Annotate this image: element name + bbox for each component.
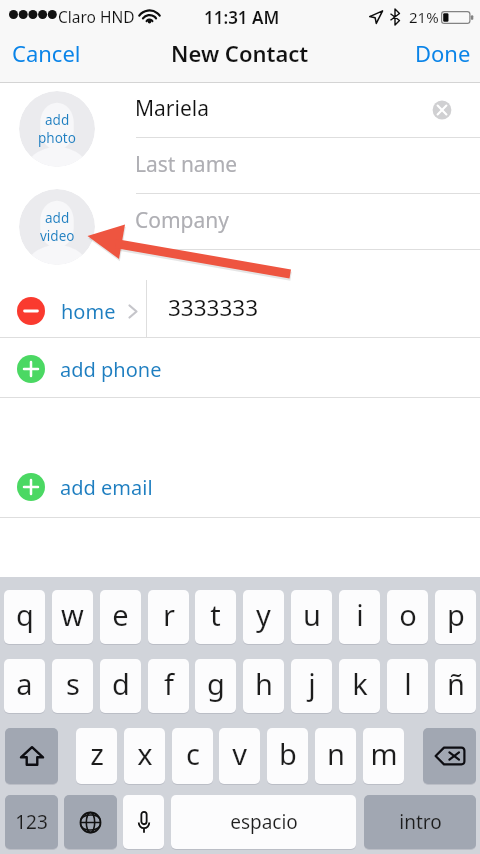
staticText: o xyxy=(399,595,417,634)
staticText: j xyxy=(308,664,316,703)
staticText: add email xyxy=(60,474,153,501)
staticText: Last name xyxy=(135,150,238,179)
staticText: y xyxy=(256,595,271,634)
staticText: New Contact xyxy=(171,38,309,68)
button[interactable]: Shift xyxy=(5,728,58,784)
staticText: 21% xyxy=(409,7,439,27)
staticText: x xyxy=(137,734,153,773)
staticText: ñ xyxy=(447,664,465,703)
staticText: 11:31 AM xyxy=(204,6,280,29)
button[interactable]: q xyxy=(4,590,45,644)
staticText: home xyxy=(61,298,116,325)
button[interactable]: y xyxy=(243,590,284,644)
staticText: e xyxy=(112,595,129,634)
staticText: i xyxy=(356,595,364,634)
staticText: espacio xyxy=(230,809,298,835)
button[interactable]: Backspace xyxy=(423,728,476,784)
staticText: photo xyxy=(38,129,76,147)
staticText: u xyxy=(303,595,321,634)
staticText: add xyxy=(45,111,70,129)
button[interactable]: g xyxy=(195,659,236,713)
staticText: Done xyxy=(415,38,471,68)
button[interactable]: m xyxy=(363,728,404,784)
staticText: intro xyxy=(399,809,442,835)
button[interactable]: Dictate xyxy=(123,795,164,849)
button[interactable]: n xyxy=(315,728,356,784)
button[interactable]: add xyxy=(19,91,95,167)
button[interactable]: espacio xyxy=(171,795,356,849)
button[interactable]: Cancel xyxy=(0,27,92,78)
button[interactable]: Switch keyboard xyxy=(64,795,117,849)
button[interactable]: s xyxy=(52,659,93,713)
button[interactable]: Done xyxy=(406,27,480,78)
staticText: g xyxy=(207,664,225,703)
button[interactable]: add phone xyxy=(0,341,480,397)
staticText: a xyxy=(16,664,33,703)
staticText: p xyxy=(447,595,465,634)
button[interactable]: r xyxy=(148,590,189,644)
staticText: h xyxy=(255,664,273,703)
button[interactable]: x xyxy=(124,728,165,784)
button[interactable]: v xyxy=(219,728,260,784)
staticText: Claro HND xyxy=(58,6,135,27)
button[interactable]: z xyxy=(76,728,117,784)
staticText: Mariela xyxy=(135,94,209,123)
button[interactable]: c xyxy=(172,728,213,784)
button[interactable]: t xyxy=(195,590,236,644)
button[interactable]: j xyxy=(291,659,332,713)
staticText: r xyxy=(163,595,175,634)
button[interactable]: w xyxy=(52,590,93,644)
button[interactable]: o xyxy=(387,590,428,644)
staticText: m xyxy=(370,734,398,773)
staticText: b xyxy=(279,734,297,773)
staticText: 3333333 xyxy=(168,292,259,323)
staticText: k xyxy=(352,664,368,703)
staticText: video xyxy=(40,227,75,245)
button[interactable]: Clear text xyxy=(432,100,452,120)
button[interactable]: f xyxy=(148,659,189,713)
staticText: n xyxy=(327,734,345,773)
staticText: s xyxy=(66,664,80,703)
button[interactable]: b xyxy=(267,728,308,784)
other: Remove phone xyxy=(17,297,45,325)
staticText: add phone xyxy=(60,356,162,383)
button[interactable]: h xyxy=(243,659,284,713)
button[interactable]: a xyxy=(4,659,45,713)
staticText: c xyxy=(186,734,200,773)
button[interactable]: add xyxy=(19,189,95,265)
button[interactable]: intro xyxy=(364,795,476,849)
staticText: f xyxy=(164,664,174,703)
staticText: Cancel xyxy=(12,38,81,68)
staticText: t xyxy=(210,595,221,634)
button[interactable]: i xyxy=(339,590,380,644)
staticText: 123 xyxy=(15,809,48,835)
button[interactable]: p xyxy=(435,590,476,644)
staticText: v xyxy=(232,734,247,773)
button[interactable]: 123 xyxy=(5,795,58,849)
staticText: Company xyxy=(135,206,229,235)
staticText: add xyxy=(45,209,70,227)
button[interactable]: l xyxy=(387,659,428,713)
button[interactable]: add email xyxy=(0,458,480,516)
staticText: z xyxy=(90,734,104,773)
button[interactable]: d xyxy=(100,659,141,713)
button[interactable]: ñ xyxy=(435,659,476,713)
staticText: w xyxy=(61,595,84,634)
staticText: d xyxy=(112,664,130,703)
button[interactable]: Remove phone xyxy=(0,291,146,331)
button[interactable]: e xyxy=(100,590,141,644)
staticText: l xyxy=(404,664,412,703)
button[interactable]: k xyxy=(339,659,380,713)
staticText: q xyxy=(16,595,34,634)
button[interactable]: u xyxy=(291,590,332,644)
